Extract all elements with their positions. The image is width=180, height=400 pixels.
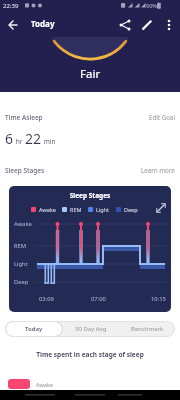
staticText: Time spent in each stage of sleep	[0, 350, 180, 359]
staticText: Deep	[124, 206, 138, 213]
button[interactable]: Sleep Stages	[9, 186, 171, 312]
staticText: 30 Day Avg	[75, 325, 107, 333]
button[interactable]: Benchmark	[119, 321, 175, 337]
staticText: 22	[25, 129, 42, 148]
button[interactable]	[136, 12, 158, 38]
staticText: Awake	[14, 220, 32, 228]
staticText: REM	[70, 206, 82, 213]
staticText: Deep	[14, 278, 29, 286]
staticText: Today	[25, 325, 43, 333]
staticText: Light	[96, 206, 110, 213]
staticText: Benchmark	[131, 325, 164, 333]
staticText: Today	[31, 18, 55, 29]
button[interactable]	[114, 12, 136, 38]
button[interactable]	[152, 199, 170, 217]
staticText: 03:09	[39, 295, 54, 303]
staticText: Time Asleep	[5, 113, 43, 122]
staticText: hr	[14, 137, 25, 146]
staticText: Awake	[36, 381, 53, 388]
staticText: 6	[5, 129, 14, 148]
staticText: Sleep Stages	[5, 166, 45, 175]
staticText: Edit Goal	[149, 113, 175, 121]
button[interactable]: Learn more	[141, 166, 175, 174]
button[interactable]	[158, 12, 180, 38]
button[interactable]: Today	[5, 321, 63, 337]
staticText: 22:39	[3, 2, 19, 10]
button[interactable]: 30 Day Avg	[63, 321, 119, 337]
staticText: 90%	[146, 2, 157, 9]
staticText: min	[42, 137, 56, 146]
staticText: Fair	[80, 66, 101, 82]
button[interactable]: Edit Goal	[149, 113, 175, 121]
button[interactable]	[0, 12, 24, 38]
staticText: Light	[14, 260, 28, 268]
button[interactable]: Awake	[8, 379, 180, 389]
staticText: Sleep Stages	[9, 191, 171, 200]
staticText: Awake	[39, 206, 56, 213]
staticText: 10:15	[151, 295, 166, 303]
staticText: 07:00	[91, 295, 106, 303]
staticText: Learn more	[141, 166, 175, 174]
staticText: REM	[14, 242, 27, 250]
